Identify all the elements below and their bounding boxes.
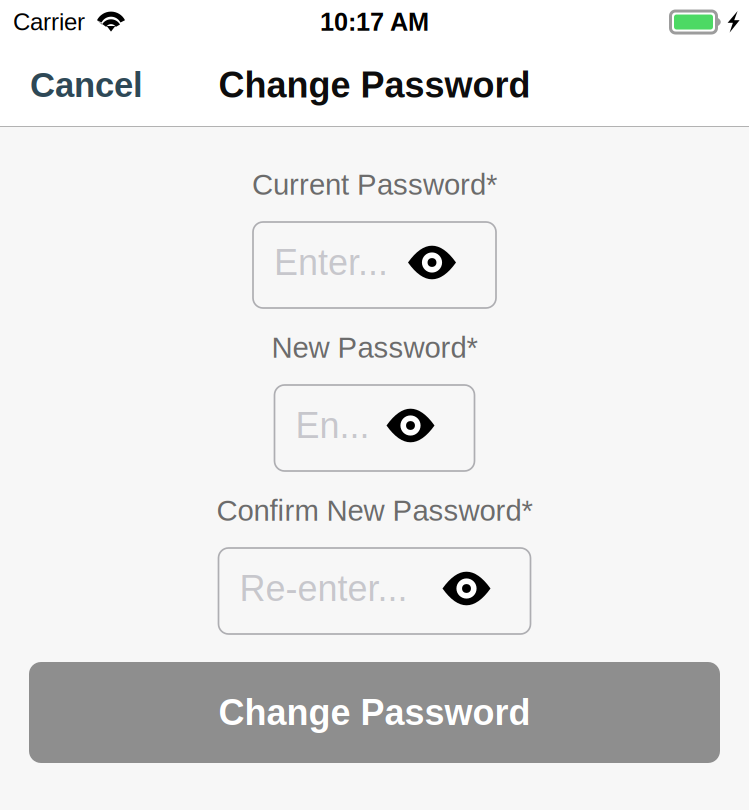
staticText: Change Password (218, 692, 530, 733)
staticText: Enter... (274, 242, 388, 283)
staticText: Change Password (218, 65, 530, 105)
staticText: Current Password* (252, 168, 497, 201)
button[interactable]: En... (274, 385, 474, 471)
button[interactable]: Enter... (253, 222, 496, 308)
button[interactable]: Cancel (18, 56, 155, 114)
button[interactable]: Show password (442, 572, 490, 605)
staticText: Re-enter... (239, 568, 407, 609)
staticText: Carrier (13, 9, 85, 35)
button[interactable]: Show password (408, 246, 456, 279)
button[interactable]: Show password (386, 409, 434, 442)
staticText: En... (295, 405, 369, 446)
staticText: 10:17 AM (320, 8, 429, 36)
button[interactable]: Re-enter... (218, 548, 530, 634)
staticText: Cancel (30, 66, 143, 104)
button[interactable]: Change Password (29, 662, 720, 763)
staticText: New Password* (271, 331, 477, 364)
staticText: Confirm New Password* (216, 494, 532, 527)
